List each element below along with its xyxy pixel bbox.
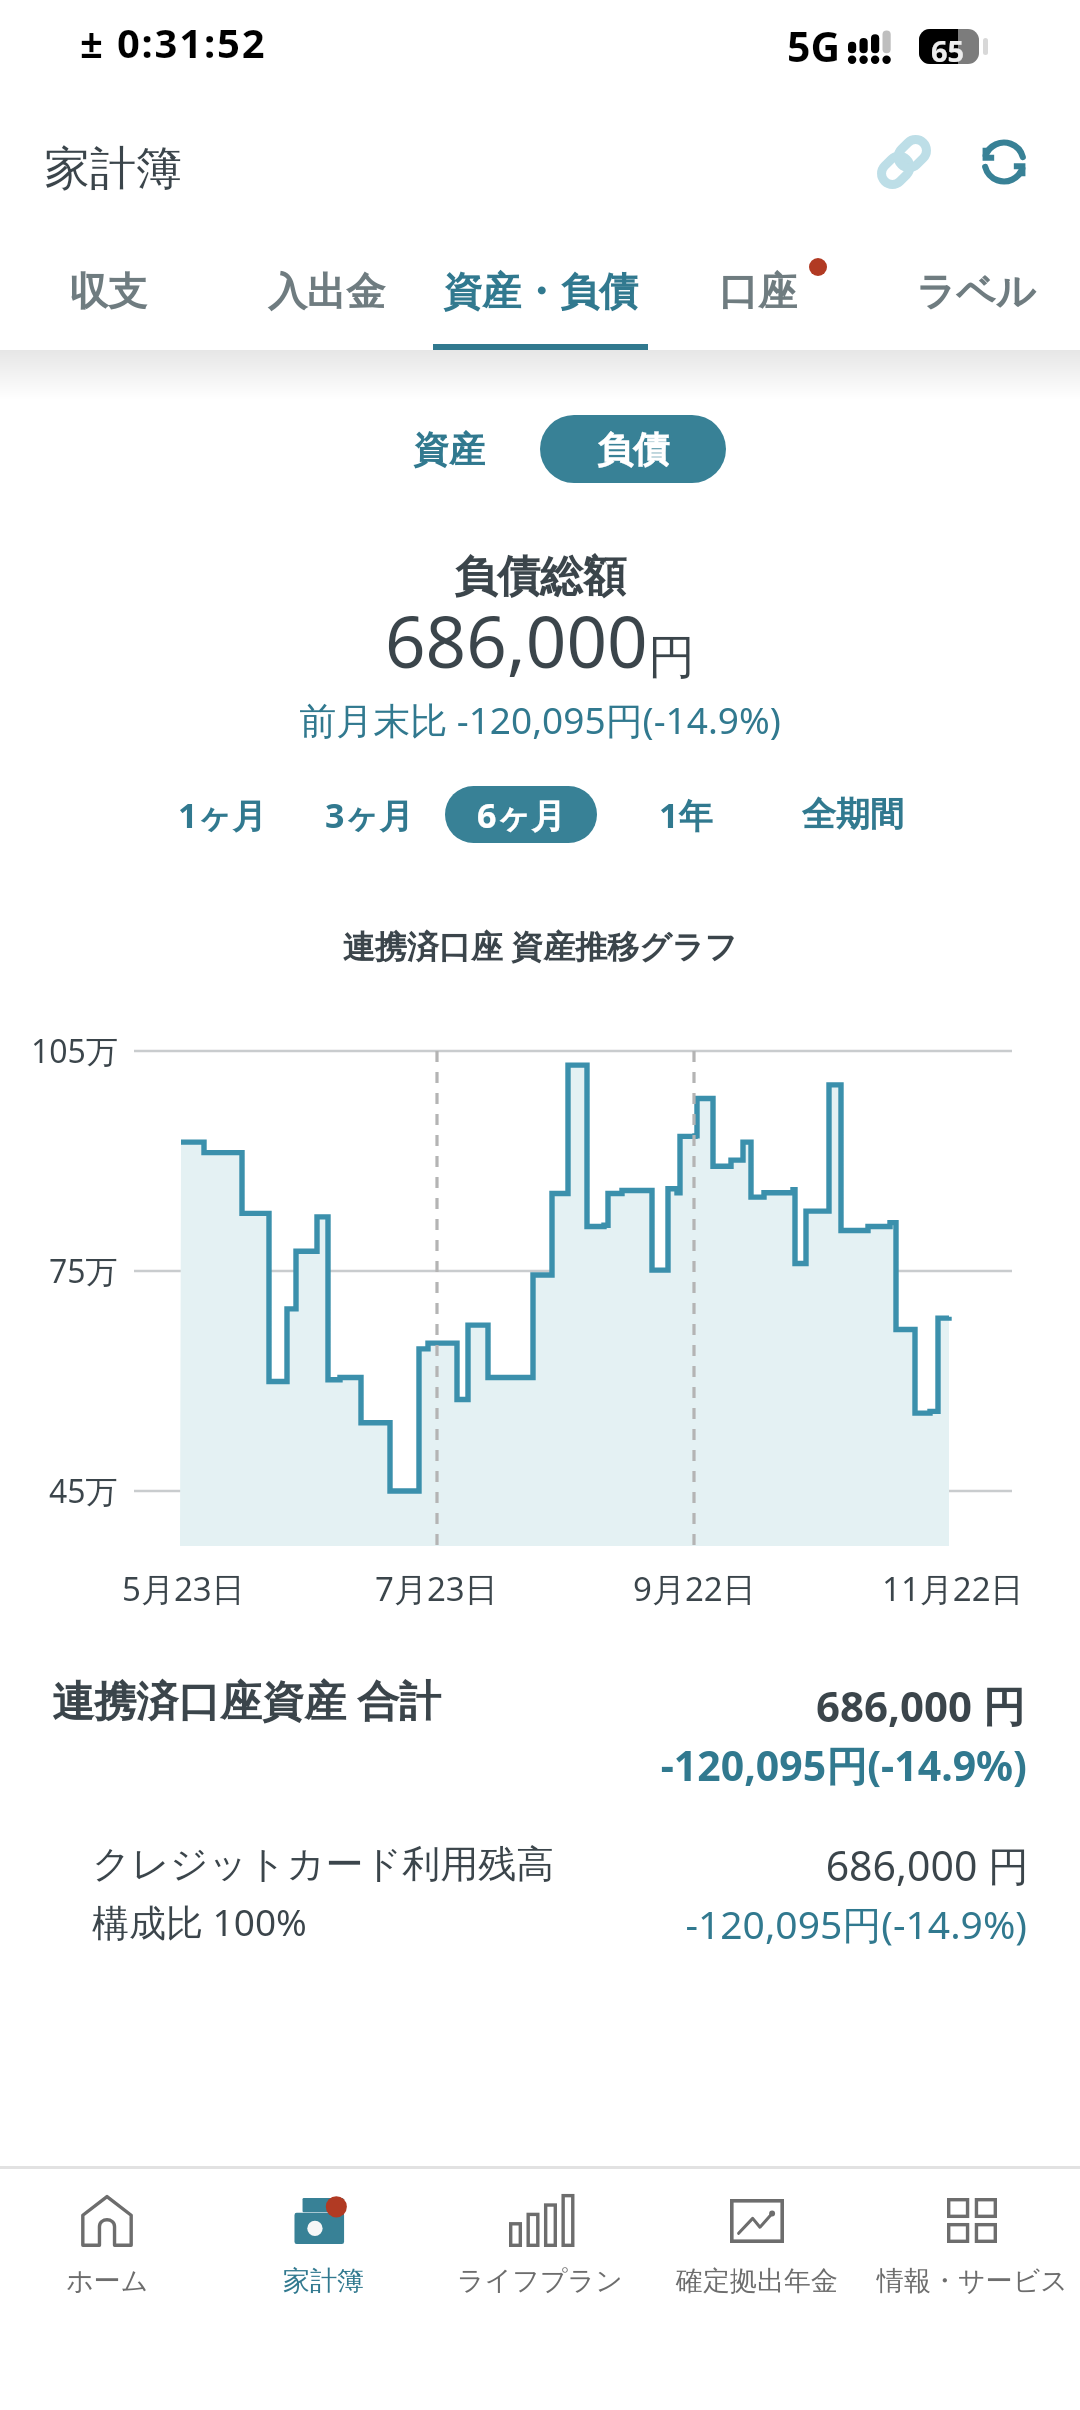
staticText: -120,095円(-14.9%)	[0, 1737, 1027, 1793]
staticText: 構成比 100%	[92, 1896, 307, 1947]
button[interactable]: ラベル	[873, 238, 1079, 344]
button[interactable]: 1年	[616, 786, 756, 843]
button[interactable]: 資産	[385, 415, 513, 483]
staticText: 7月23日	[375, 1566, 498, 1611]
button[interactable]: ホーム	[0, 2169, 215, 2300]
button[interactable]: 連携済口座資産 合計	[0, 1660, 1080, 1805]
button[interactable]: 口座	[662, 238, 854, 344]
button[interactable]: 3ヶ月	[299, 786, 439, 843]
staticText: 45万	[49, 1469, 118, 1513]
staticText: 負債	[597, 427, 669, 472]
button[interactable]: クレジットカード利用残高	[0, 1826, 1080, 1966]
button[interactable]: 収支	[13, 238, 203, 344]
staticText: 686,000 円	[0, 1837, 1029, 1893]
staticText: 入出金	[268, 267, 385, 316]
staticText: 負債総額	[0, 550, 1080, 604]
staticText: 9月22日	[633, 1566, 756, 1611]
staticText: 連携済口座資産 合計	[52, 1671, 441, 1728]
staticText: 6ヶ月	[477, 792, 566, 838]
staticText: 前月末比 -120,095円(-14.9%)	[0, 694, 1080, 745]
button[interactable]: 全期間	[783, 786, 923, 843]
staticText: 686,000	[385, 592, 648, 689]
staticText: 資産	[413, 427, 485, 472]
button[interactable]: 負債	[540, 415, 726, 483]
staticText: 686,000 円	[0, 1677, 1025, 1734]
button[interactable]: 更新	[954, 112, 1054, 212]
staticText: 収支	[69, 267, 147, 316]
button[interactable]: 1ヶ月	[152, 786, 292, 843]
staticText: 連携済口座 資産推移グラフ	[0, 924, 1080, 968]
staticText: 5G	[787, 18, 841, 74]
button[interactable]: 6ヶ月	[445, 786, 597, 843]
staticText: 65	[931, 31, 965, 66]
staticText: 105万	[31, 1029, 118, 1073]
staticText: 家計簿	[44, 140, 182, 198]
button[interactable]: 資産・負債	[415, 238, 665, 344]
staticText: 11月22日	[882, 1566, 1024, 1611]
button[interactable]: 家計簿	[215, 2169, 431, 2300]
staticText: 情報・サービス	[877, 2264, 1068, 2298]
button[interactable]: ライフプラン	[432, 2169, 648, 2300]
staticText: ラベル	[916, 267, 1036, 316]
staticText: 5月23日	[122, 1566, 245, 1611]
staticText: 1ヶ月	[178, 792, 267, 838]
staticText: ホーム	[66, 2264, 149, 2298]
staticText: 1年	[659, 792, 713, 838]
staticText: 3ヶ月	[325, 792, 414, 838]
staticText: -120,095円(-14.9%)	[0, 1897, 1027, 1950]
staticText: ライフプラン	[457, 2264, 623, 2298]
staticText: 円	[648, 628, 695, 687]
staticText: 資産・負債	[443, 267, 638, 316]
button[interactable]: 情報・サービス	[864, 2169, 1080, 2300]
button[interactable]: 入出金	[223, 238, 429, 344]
staticText: 口座	[719, 267, 797, 316]
button[interactable]: 連携	[854, 112, 954, 212]
staticText: クレジットカード利用残高	[92, 1840, 555, 1888]
staticText: 確定拠出年金	[676, 2264, 838, 2298]
staticText: ± 0:31:52	[80, 15, 267, 69]
staticText: 家計簿	[283, 2264, 364, 2298]
staticText: 全期間	[802, 793, 904, 836]
staticText: 75万	[49, 1249, 118, 1293]
button[interactable]: 確定拠出年金	[649, 2169, 865, 2300]
